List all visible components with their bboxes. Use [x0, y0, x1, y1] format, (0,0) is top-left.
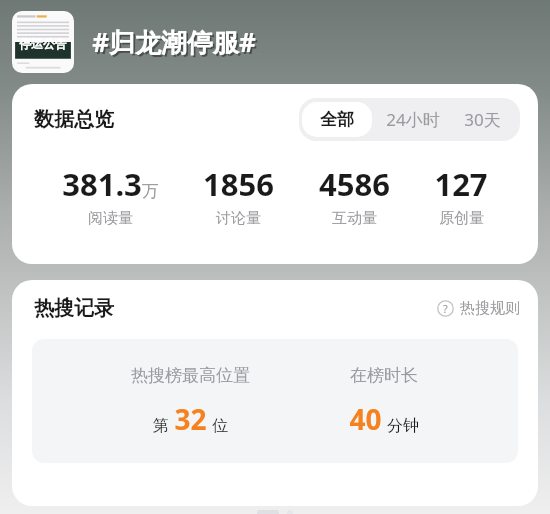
staticText: 分钟 [387, 416, 419, 436]
staticText: 互动量 [332, 209, 377, 228]
staticText: ? [443, 301, 448, 316]
staticText: 热搜规则 [460, 299, 520, 318]
button[interactable]: 30天 [454, 101, 517, 138]
staticText: 4586 [319, 163, 390, 205]
staticText: 热搜榜最高位置 [131, 365, 250, 386]
button[interactable]: 4586 [315, 163, 394, 228]
button[interactable]: 381.3 [58, 163, 163, 228]
staticText: #归龙潮停服# [92, 24, 256, 60]
button[interactable]: ? [437, 299, 520, 318]
staticText: 数据总览 [34, 107, 114, 132]
staticText: 381.3 [62, 163, 142, 205]
staticText: 阅读量 [88, 209, 133, 228]
button[interactable]: 1856 [199, 163, 278, 228]
button[interactable]: 在榜时长 [349, 365, 419, 438]
staticText: 讨论量 [216, 209, 261, 228]
button[interactable]: 127 [430, 163, 492, 228]
staticText: 全部 [320, 109, 354, 130]
button[interactable]: 热搜榜最高位置 [131, 365, 250, 438]
staticText: #归龙潮停服# [94, 26, 258, 62]
staticText: 24小时 [386, 108, 440, 131]
staticText: 30天 [464, 108, 501, 131]
staticText: 原创量 [439, 209, 484, 228]
staticText: 位 [212, 416, 228, 436]
staticText: 万 [142, 181, 159, 202]
staticText: 32 [174, 400, 207, 438]
staticText: 第 [153, 416, 169, 436]
button[interactable]: 停运公告缩略图 [12, 11, 74, 73]
staticText: 40 [349, 400, 382, 438]
staticText: 在榜时长 [350, 365, 418, 386]
staticText: 1856 [203, 163, 274, 205]
staticText: 热搜记录 [34, 296, 114, 321]
button[interactable]: 24小时 [372, 101, 454, 138]
staticText: 127 [434, 163, 488, 205]
staticText: 停运公告 [19, 36, 67, 51]
button[interactable]: 全部 [302, 102, 372, 137]
